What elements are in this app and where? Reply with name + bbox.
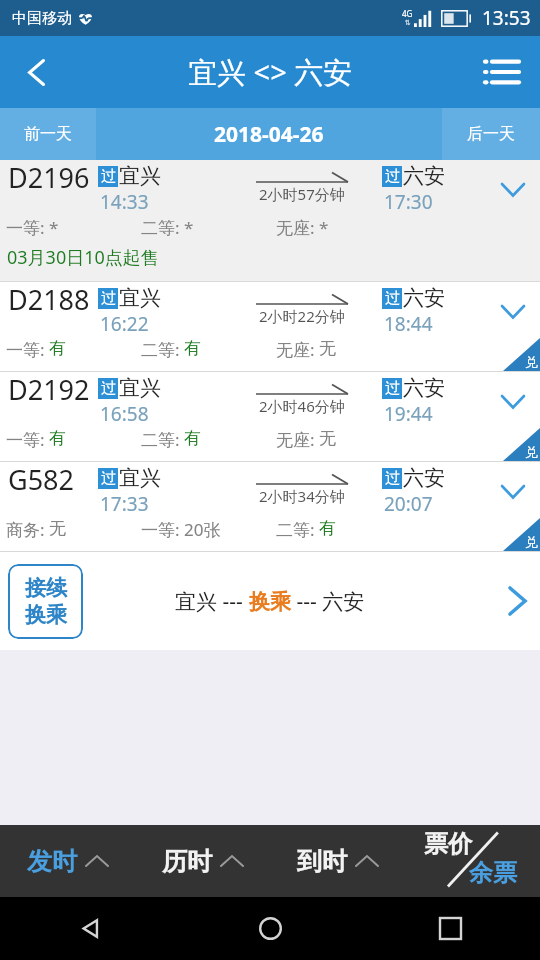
staticText: 票价	[424, 829, 472, 859]
staticText: 有	[319, 518, 336, 539]
staticText: 13:53	[482, 5, 531, 31]
staticText: 换乘	[249, 589, 291, 615]
button[interactable]: 后一天	[442, 108, 540, 160]
staticText: 2小时57分钟	[259, 184, 345, 204]
staticText: 宜兴	[119, 375, 161, 401]
staticText: 六安	[403, 163, 445, 189]
staticText: 2小时34分钟	[259, 486, 345, 506]
staticText: 无	[319, 338, 336, 359]
staticText: *	[184, 216, 194, 239]
button[interactable]: G582	[0, 462, 540, 551]
staticText: 中国移动	[12, 9, 72, 28]
staticText: G582	[8, 461, 74, 498]
staticText: 兑	[525, 354, 538, 370]
staticText: 过	[101, 289, 116, 308]
button[interactable]: 2018-04-26	[96, 108, 442, 160]
staticText: D2192	[8, 371, 90, 408]
staticText: 17:33	[100, 491, 149, 517]
button[interactable]: Expand details	[486, 164, 540, 216]
staticText: 20张	[184, 518, 221, 541]
staticText: 过	[385, 289, 400, 308]
staticText: 接续	[25, 575, 67, 601]
staticText: 无座:	[276, 338, 319, 361]
staticText: 一等:	[6, 216, 49, 239]
staticText: 过	[385, 167, 400, 186]
staticText: 二等:	[141, 216, 184, 239]
staticText: 03月30日10点起售	[7, 245, 159, 270]
staticText: 二等:	[141, 428, 184, 451]
staticText: 历时	[162, 846, 212, 877]
button[interactable]: 历时	[135, 825, 270, 897]
staticText: 20:07	[384, 491, 433, 517]
staticText: 16:58	[100, 401, 149, 427]
button[interactable]: 前一天	[0, 108, 96, 160]
staticText: 宜兴 ---	[175, 587, 249, 616]
button[interactable]: Expand details	[486, 376, 540, 428]
staticText: 无座:	[276, 428, 319, 451]
staticText: 宜兴 <> 六安	[188, 52, 353, 92]
staticText: 过	[385, 469, 400, 488]
button[interactable]: Recent apps	[360, 897, 540, 960]
staticText: 发时	[27, 846, 77, 877]
staticText: 2小时46分钟	[259, 396, 345, 416]
staticText: 宜兴	[119, 285, 161, 311]
staticText: 到时	[297, 846, 347, 877]
staticText: 后一天	[467, 124, 515, 144]
staticText: *	[319, 216, 329, 239]
staticText: 4G	[402, 8, 413, 19]
staticText: 一等:	[6, 338, 49, 361]
staticText: 二等:	[276, 518, 319, 541]
button[interactable]: 发时	[0, 825, 135, 897]
button[interactable]: D2188	[0, 282, 540, 371]
staticText: 一等:	[6, 428, 49, 451]
button[interactable]: 票价	[405, 825, 540, 897]
button[interactable]: D2192	[0, 372, 540, 461]
staticText: D2196	[8, 159, 90, 196]
staticText: 余票	[469, 858, 517, 888]
staticText: 有	[184, 428, 201, 449]
staticText: 过	[101, 379, 116, 398]
staticText: ⇅	[405, 19, 411, 27]
button[interactable]: Back	[0, 897, 180, 960]
staticText: 16:22	[100, 311, 149, 337]
staticText: 有	[49, 338, 66, 359]
staticText: 换乘	[25, 602, 67, 628]
staticText: 宜兴	[119, 163, 161, 189]
staticText: 无	[319, 428, 336, 449]
staticText: 14:33	[100, 189, 149, 215]
staticText: 兑	[525, 444, 538, 460]
staticText: 17:30	[384, 189, 433, 215]
button[interactable]: Expand details	[486, 286, 540, 338]
staticText: 19:44	[384, 401, 433, 427]
button[interactable]: Expand details	[486, 466, 540, 518]
staticText: 六安	[403, 465, 445, 491]
staticText: 过	[101, 469, 116, 488]
staticText: 兑	[525, 534, 538, 550]
staticText: --- 六安	[291, 587, 365, 616]
staticText: 六安	[403, 375, 445, 401]
staticText: 商务:	[6, 518, 49, 541]
staticText: 前一天	[24, 124, 72, 144]
staticText: 有	[184, 338, 201, 359]
staticText: 有	[49, 428, 66, 449]
staticText: 无	[49, 518, 66, 539]
staticText: 无座:	[276, 216, 319, 239]
staticText: 2018-04-26	[214, 120, 324, 149]
staticText: D2188	[8, 281, 90, 318]
staticText: *	[49, 216, 59, 239]
button[interactable]: Show transfers	[494, 566, 540, 636]
button[interactable]: Home	[180, 897, 360, 960]
button[interactable]: 到时	[270, 825, 405, 897]
staticText: 过	[385, 379, 400, 398]
staticText: 二等:	[141, 338, 184, 361]
button[interactable]: Menu	[464, 36, 540, 108]
staticText: 六安	[403, 285, 445, 311]
button[interactable]: D2196	[0, 160, 540, 281]
button[interactable]: 接续	[0, 552, 540, 650]
button[interactable]: Back	[0, 36, 72, 108]
staticText: 过	[101, 167, 116, 186]
staticText: 18:44	[384, 311, 433, 337]
staticText: 宜兴	[119, 465, 161, 491]
staticText: 一等:	[141, 518, 184, 541]
staticText: 2小时22分钟	[259, 306, 345, 326]
